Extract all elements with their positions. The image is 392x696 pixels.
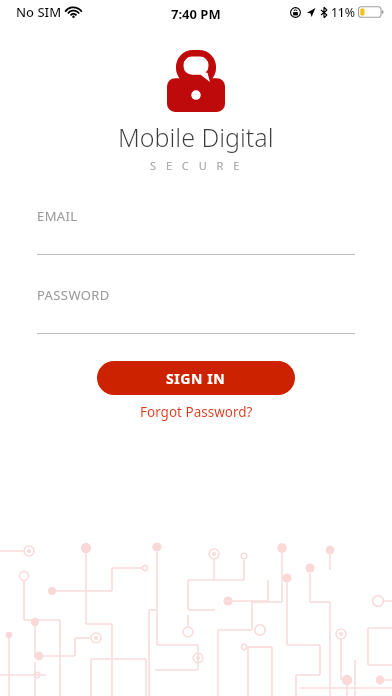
staticText: Forgot Password? — [140, 403, 253, 421]
staticText: EMAIL — [37, 207, 78, 225]
staticText: No SIM — [16, 3, 62, 21]
staticText: SIGN IN — [166, 369, 226, 388]
button[interactable]: SIGN IN — [97, 361, 295, 395]
staticText: S E C U R E — [150, 158, 243, 173]
staticText: 11% — [331, 4, 355, 20]
button[interactable]: PASSWORD — [0, 286, 392, 334]
staticText: Mobile Digital — [118, 120, 274, 154]
staticText: 7:40 PM — [171, 5, 221, 23]
button[interactable]: EMAIL — [0, 207, 392, 255]
button[interactable]: Forgot Password? — [132, 401, 261, 423]
staticText: PASSWORD — [37, 286, 110, 304]
